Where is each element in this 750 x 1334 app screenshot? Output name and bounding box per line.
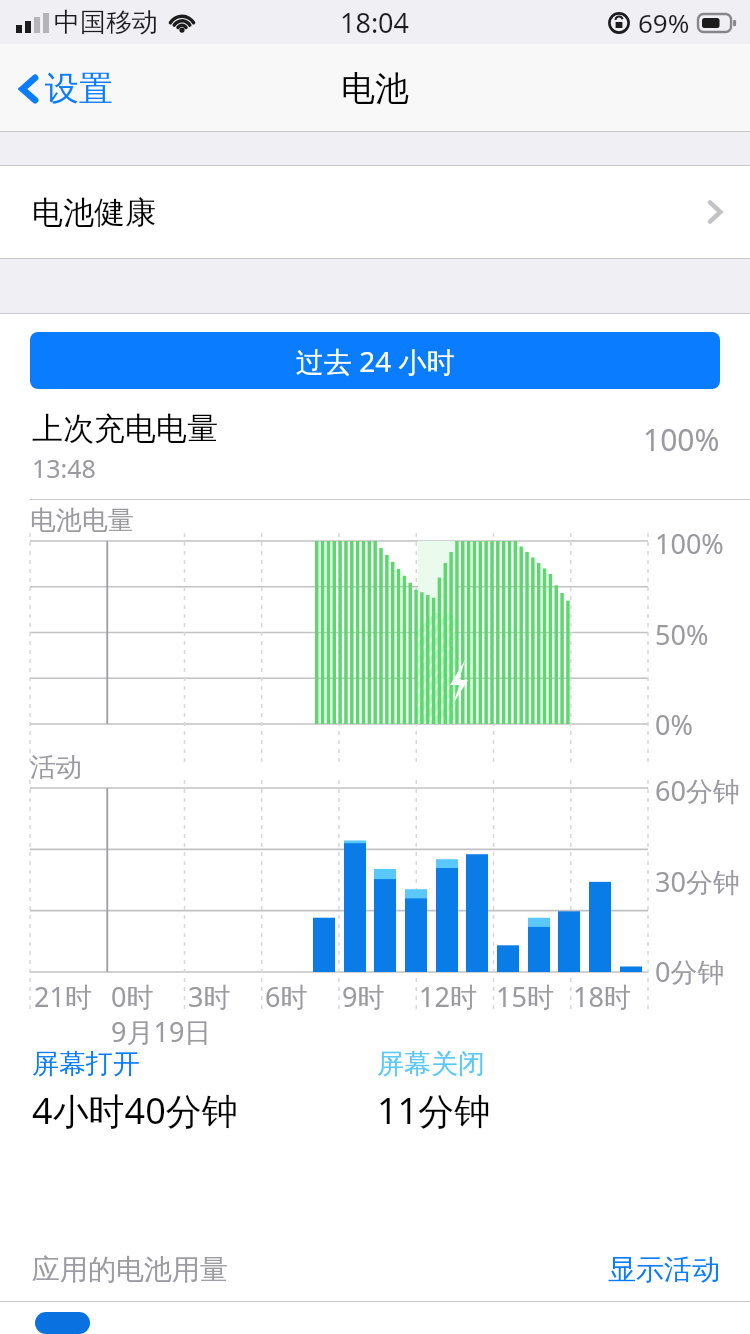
staticText: 电池电量: [30, 504, 134, 537]
staticText: 电池: [341, 67, 409, 110]
staticText: 电池健康: [32, 193, 156, 232]
staticText: 30分钟: [655, 863, 740, 900]
staticText: 18时: [573, 978, 631, 1015]
staticText: 13:48: [32, 451, 96, 485]
staticText: 活动: [30, 751, 82, 784]
staticText: 60分钟: [655, 772, 740, 809]
staticText: 设置: [45, 67, 113, 110]
staticText: 3时: [188, 978, 231, 1015]
staticText: 9月19日: [111, 1013, 212, 1050]
staticText: 100%: [655, 525, 724, 562]
staticText: 中国移动: [54, 6, 158, 39]
staticText: 50%: [655, 616, 709, 653]
staticText: 9时: [342, 978, 385, 1015]
staticText: 应用的电池用量: [32, 1252, 228, 1287]
button[interactable]: 返回设置: [12, 57, 119, 120]
staticText: 100%: [643, 419, 720, 460]
staticText: 21时: [34, 978, 92, 1015]
button[interactable]: 电池健康: [0, 166, 750, 258]
staticText: 69%: [638, 5, 690, 40]
staticText: 4小时40分钟: [32, 1086, 238, 1135]
staticText: 15时: [496, 978, 554, 1015]
staticText: 12时: [419, 978, 477, 1015]
staticText: 屏幕打开: [32, 1047, 140, 1081]
staticText: 0%: [655, 706, 693, 743]
staticText: 显示活动: [608, 1252, 720, 1287]
staticText: 屏幕关闭: [377, 1047, 485, 1081]
staticText: 过去 24 小时: [296, 342, 455, 380]
staticText: 0时: [111, 978, 154, 1015]
staticText: 11分钟: [377, 1086, 491, 1135]
staticText: 上次充电电量: [32, 409, 218, 448]
staticText: 0分钟: [655, 953, 725, 990]
staticText: 6时: [265, 978, 308, 1015]
staticText: 18:04: [340, 4, 410, 41]
button[interactable]: 显示活动: [608, 1252, 720, 1287]
button[interactable]: 过去 24 小时: [30, 332, 720, 389]
